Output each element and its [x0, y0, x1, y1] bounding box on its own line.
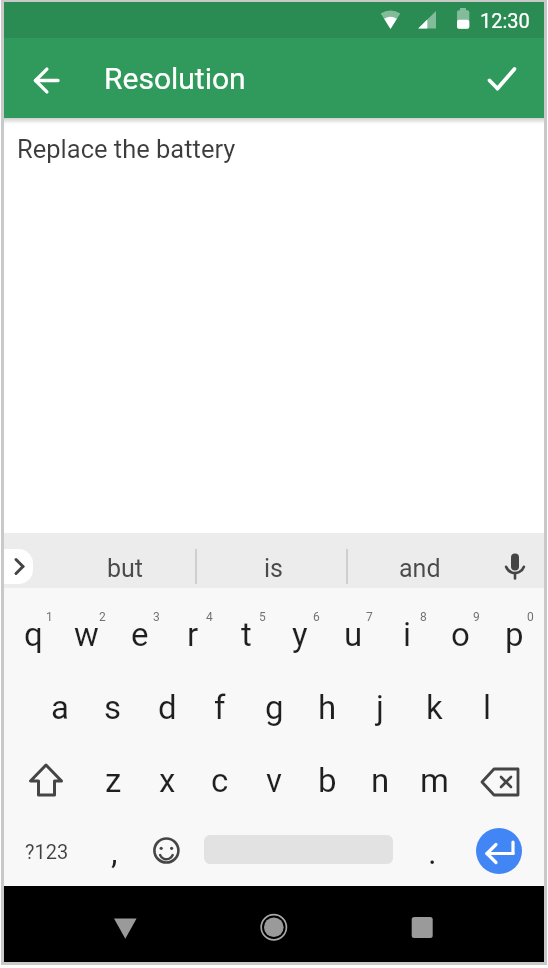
staticText: y — [292, 615, 308, 654]
staticText: Resolution — [104, 61, 246, 96]
button[interactable]: y — [273, 599, 327, 669]
staticText: z — [105, 761, 122, 800]
staticText: i — [403, 615, 412, 654]
staticText: t — [241, 615, 252, 654]
button[interactable]: u — [326, 599, 380, 669]
staticText: p — [505, 615, 524, 654]
button[interactable]: n — [353, 745, 407, 815]
staticText: Replace the battery — [17, 134, 236, 164]
staticText: v — [266, 761, 282, 800]
button[interactable] — [476, 828, 522, 874]
staticText: 0 — [527, 610, 534, 624]
staticText: d — [158, 688, 177, 727]
staticText: x — [159, 761, 176, 800]
button[interactable]: f — [193, 672, 247, 742]
staticText: but — [107, 554, 143, 583]
button[interactable]: s — [86, 672, 140, 742]
staticText: b — [318, 761, 337, 800]
staticText: o — [451, 615, 470, 654]
button[interactable] — [100, 903, 152, 955]
button[interactable]: b — [300, 745, 354, 815]
staticText: u — [344, 615, 363, 654]
staticText: q — [24, 615, 43, 654]
staticText: 12:30 — [480, 9, 530, 32]
staticText: 9 — [473, 610, 480, 624]
staticText: 3 — [153, 610, 160, 624]
staticText: 1 — [46, 610, 53, 624]
button[interactable]: v — [247, 745, 301, 815]
button[interactable]: p — [487, 599, 541, 669]
button[interactable]: . — [405, 817, 459, 887]
button[interactable]: but — [55, 543, 195, 593]
staticText: 7 — [366, 610, 373, 624]
button[interactable]: q — [6, 599, 60, 669]
staticText: e — [131, 615, 149, 654]
staticText: s — [104, 688, 122, 727]
button[interactable]: , — [87, 817, 141, 887]
button[interactable] — [478, 56, 530, 104]
button[interactable]: i — [380, 599, 434, 669]
button[interactable]: w — [59, 599, 113, 669]
button[interactable]: c — [193, 745, 247, 815]
button[interactable] — [4, 549, 33, 584]
button[interactable] — [495, 546, 535, 586]
button[interactable]: m — [407, 745, 461, 815]
button[interactable]: g — [247, 672, 301, 742]
button[interactable]: o — [433, 599, 487, 669]
button[interactable]: r — [166, 599, 220, 669]
button[interactable]: l — [460, 672, 514, 742]
staticText: and — [399, 554, 441, 583]
button[interactable]: d — [140, 672, 194, 742]
button[interactable]: k — [407, 672, 461, 742]
staticText: 4 — [206, 610, 213, 624]
button[interactable]: z — [86, 745, 140, 815]
staticText: ?123 — [25, 840, 69, 863]
staticText: c — [211, 761, 229, 800]
staticText: , — [111, 833, 118, 872]
staticText: . — [428, 833, 437, 872]
staticText: k — [426, 688, 443, 727]
staticText: f — [214, 688, 226, 727]
button[interactable] — [22, 56, 70, 104]
staticText: m — [420, 761, 449, 800]
staticText: g — [265, 688, 284, 727]
staticText: 8 — [420, 610, 427, 624]
button[interactable]: x — [140, 745, 194, 815]
button[interactable]: is — [203, 543, 343, 593]
button[interactable] — [17, 750, 73, 810]
staticText: w — [74, 615, 99, 654]
button[interactable] — [248, 901, 300, 953]
button[interactable]: a — [33, 672, 87, 742]
button[interactable]: ?123 — [17, 821, 77, 881]
staticText: r — [187, 615, 199, 654]
button[interactable] — [396, 902, 448, 954]
button[interactable] — [146, 831, 186, 871]
staticText: l — [483, 688, 492, 727]
staticText: h — [318, 688, 337, 727]
staticText: 2 — [99, 610, 106, 624]
staticText: 6 — [313, 610, 320, 624]
button[interactable]: h — [300, 672, 354, 742]
staticText: a — [51, 688, 69, 727]
staticText: 5 — [259, 610, 266, 624]
button[interactable]: t — [219, 599, 273, 669]
staticText: is — [264, 554, 283, 583]
button[interactable]: e — [113, 599, 167, 669]
button[interactable] — [474, 754, 526, 806]
button[interactable]: j — [353, 672, 407, 742]
button[interactable]: and — [350, 543, 490, 593]
staticText: n — [371, 761, 390, 800]
staticText: j — [376, 688, 384, 727]
